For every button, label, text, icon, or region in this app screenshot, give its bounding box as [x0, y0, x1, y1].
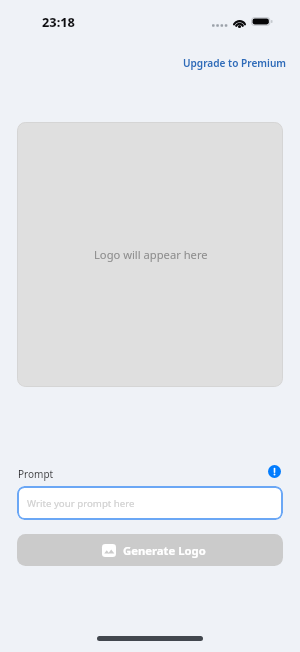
staticText: Generate Logo	[123, 543, 206, 558]
staticText: Prompt	[18, 467, 54, 481]
staticText: Logo will appear here	[94, 247, 208, 262]
button[interactable]: Generate Logo	[17, 534, 283, 566]
button[interactable]: Write your prompt here	[17, 486, 283, 520]
staticText: 23:18	[42, 13, 75, 30]
button[interactable]: Upgrade to Premium	[181, 54, 289, 72]
staticText: Write your prompt here	[27, 497, 135, 510]
staticText: Upgrade to Premium	[183, 56, 287, 70]
button[interactable]: Logo preview area	[17, 122, 283, 387]
button[interactable]: Info	[268, 465, 281, 478]
